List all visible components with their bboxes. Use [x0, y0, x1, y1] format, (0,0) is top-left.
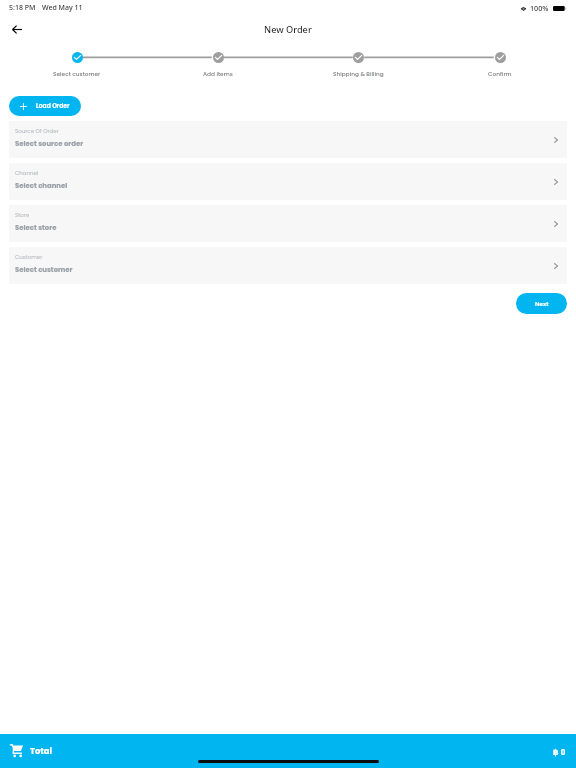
staticText: ฿ 0	[553, 746, 566, 757]
button[interactable]: Add items	[147, 46, 288, 78]
staticText: Channel	[15, 169, 39, 177]
staticText: Load Order	[36, 102, 70, 110]
staticText: Select store	[15, 223, 57, 233]
button[interactable]: Customer	[9, 247, 567, 284]
staticText: Customer	[15, 253, 43, 261]
staticText: Add items	[203, 70, 233, 78]
button[interactable]: Source Of Order	[9, 121, 567, 158]
staticText: Confirm	[488, 70, 512, 78]
staticText: Select customer	[15, 265, 73, 275]
staticText: Store	[15, 211, 30, 219]
staticText: New Order	[264, 23, 312, 36]
staticText: Select channel	[15, 181, 68, 191]
button[interactable]: Load Order	[9, 96, 81, 116]
staticText: Total	[30, 745, 52, 757]
button[interactable]: Store	[9, 205, 567, 242]
button[interactable]: Back	[6, 19, 27, 40]
button[interactable]: Select customer	[6, 46, 147, 78]
staticText: Wed May 11	[42, 3, 83, 13]
staticText: Source Of Order	[15, 127, 59, 135]
staticText: 100%	[530, 3, 549, 13]
staticText: 5:18 PM	[9, 3, 36, 13]
button[interactable]: Confirm	[429, 46, 570, 78]
staticText: Select source order	[15, 139, 84, 149]
staticText: Next	[535, 300, 549, 308]
staticText: Select customer	[53, 70, 101, 78]
staticText: Shipping & Billing	[333, 70, 384, 78]
button[interactable]: Channel	[9, 163, 567, 200]
button[interactable]: Shipping & Billing	[288, 46, 429, 78]
button[interactable]: Next	[516, 293, 567, 314]
button[interactable]: Total	[10, 744, 52, 757]
